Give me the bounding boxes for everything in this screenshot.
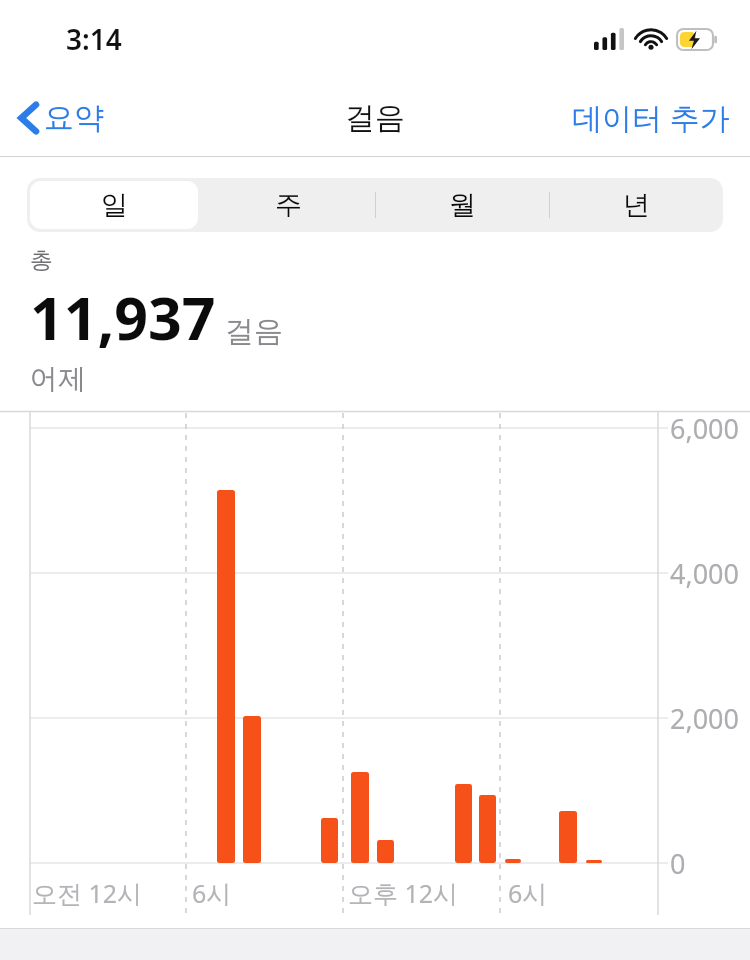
staticText: 어제 xyxy=(30,361,86,396)
staticText: 월 xyxy=(449,188,476,222)
staticText: 3:14 xyxy=(66,20,122,58)
staticText: 6,000 xyxy=(670,410,740,447)
staticText: 데이터 추가 xyxy=(572,97,730,138)
staticText: 요약 xyxy=(44,99,104,137)
staticText: 걸음 xyxy=(345,99,405,137)
staticText: 6시 xyxy=(508,876,548,910)
staticText: 총 xyxy=(30,246,53,275)
staticText: 오전 12시 xyxy=(32,876,143,910)
button[interactable]: 년 xyxy=(549,178,723,232)
staticText: 주 xyxy=(275,188,302,222)
staticText: 일 xyxy=(101,188,128,222)
staticText: 11,937 xyxy=(30,277,216,357)
staticText: 년 xyxy=(623,188,650,222)
button[interactable]: 요약 xyxy=(0,91,116,145)
button[interactable]: 주 xyxy=(201,178,375,232)
staticText: 6시 xyxy=(192,876,232,910)
button[interactable]: 일 xyxy=(27,178,201,232)
staticText: 4,000 xyxy=(670,555,740,592)
staticText: 오후 12시 xyxy=(348,876,459,910)
staticText: 2,000 xyxy=(670,700,740,737)
button[interactable]: 월 xyxy=(375,178,549,232)
staticText: 걸음 xyxy=(225,313,283,350)
staticText: 0 xyxy=(670,845,686,882)
button[interactable]: 데이터 추가 xyxy=(552,87,750,148)
